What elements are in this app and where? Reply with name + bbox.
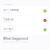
staticText: Storage [3,27,13,30]
staticText: System Status [3,4,12,5]
staticText: Database [3,18,14,21]
staticText: Operational [3,31,11,33]
button[interactable]: Storage [2,25,48,34]
staticText: API Gateway [3,8,18,12]
staticText: Degraded [3,21,11,23]
button[interactable]: Database [2,16,48,25]
staticText: Operational [3,12,11,14]
button[interactable]: API Gateway [2,6,48,16]
staticText: What happened [3,37,28,40]
